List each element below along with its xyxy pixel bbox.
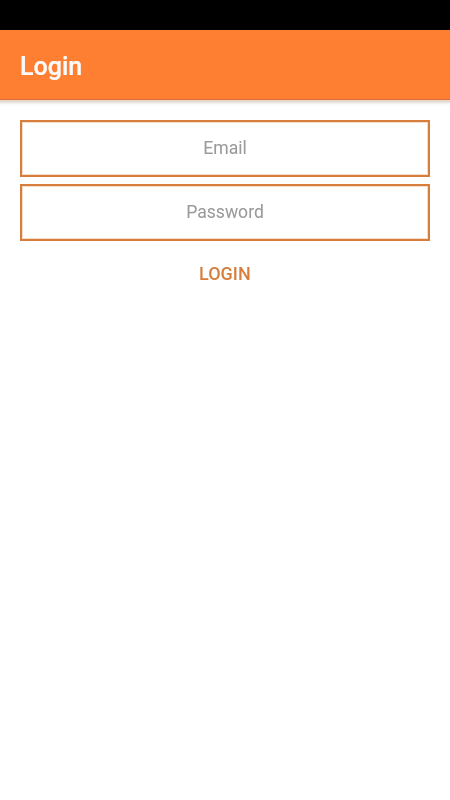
staticText: Email xyxy=(203,138,247,159)
staticText: Login xyxy=(20,52,83,81)
button[interactable]: Email xyxy=(20,120,430,177)
staticText: LOGIN xyxy=(199,263,251,284)
button[interactable]: Password xyxy=(20,184,430,241)
button[interactable]: LOGIN xyxy=(20,255,430,289)
staticText: Password xyxy=(186,202,264,223)
